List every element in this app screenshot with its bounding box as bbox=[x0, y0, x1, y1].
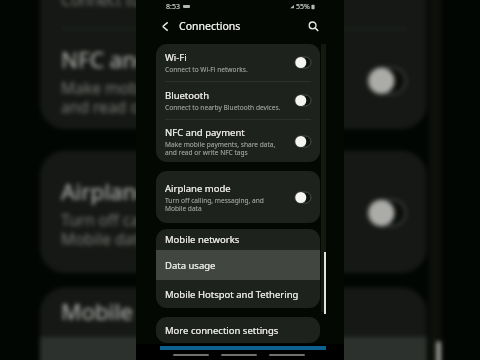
staticText: Turn off calling, messaging, and Mobile … bbox=[165, 196, 264, 213]
button[interactable]: More connection settings bbox=[156, 317, 320, 343]
button[interactable]: Toggle bbox=[295, 136, 311, 147]
staticText: Data usage bbox=[165, 259, 216, 272]
button[interactable]: Toggle bbox=[295, 57, 311, 68]
staticText: Data usage bbox=[61, 358, 181, 360]
button[interactable]: Data usage bbox=[156, 250, 320, 280]
staticText: Connect to nearby Bluetooth devices. bbox=[165, 103, 281, 112]
staticText: Turn off calling, messaging, and Mobile … bbox=[61, 209, 295, 249]
button[interactable]: Toggle bbox=[295, 192, 311, 203]
button[interactable]: Toggle bbox=[295, 95, 311, 106]
button[interactable]: Back bbox=[158, 17, 171, 35]
staticText: Make mobile payments, share data, and re… bbox=[165, 140, 276, 157]
button[interactable]: Mobile Hotspot and Tethering bbox=[156, 280, 320, 308]
button[interactable]: Navigation bbox=[269, 354, 305, 356]
staticText: Wi-Fi bbox=[165, 51, 187, 64]
button[interactable]: Navigation bbox=[173, 354, 209, 356]
button[interactable]: Mobile networks bbox=[40, 287, 427, 337]
button[interactable]: Mobile networks bbox=[156, 229, 320, 250]
staticText: Airplane mode bbox=[165, 182, 231, 195]
button[interactable]: Search bbox=[305, 18, 321, 34]
staticText: Mobile Hotspot and Tethering bbox=[165, 288, 299, 301]
button[interactable]: NFC and payment bbox=[156, 120, 320, 162]
staticText: Airplane mode bbox=[61, 176, 217, 207]
button[interactable]: Wi-Fi bbox=[156, 44, 320, 81]
staticText: Bluetooth bbox=[165, 89, 210, 102]
staticText: 55% bbox=[296, 2, 310, 12]
staticText: Make mobile payments, share data, and re… bbox=[61, 77, 323, 117]
button[interactable]: Data usage bbox=[40, 337, 427, 360]
button[interactable]: Toggle bbox=[368, 68, 406, 94]
staticText: Connections bbox=[179, 19, 241, 33]
staticText: Mobile networks bbox=[165, 233, 240, 246]
staticText: Mobile networks bbox=[61, 297, 238, 327]
staticText: More connection settings bbox=[165, 324, 279, 337]
staticText: Connect to nearby Bluetooth devices. bbox=[61, 0, 335, 11]
staticText: NFC and payment bbox=[165, 126, 245, 139]
button[interactable]: Bluetooth bbox=[40, 0, 427, 28]
staticText: Connect to Wi-Fi networks. bbox=[165, 65, 248, 74]
button[interactable]: Navigation bbox=[221, 354, 257, 356]
button[interactable]: Toggle bbox=[368, 200, 406, 226]
button[interactable]: Airplane mode bbox=[156, 171, 320, 223]
button[interactable]: Bluetooth bbox=[156, 82, 320, 119]
button[interactable]: NFC and payment bbox=[40, 30, 427, 129]
staticText: NFC and payment bbox=[61, 44, 250, 75]
button[interactable]: Airplane mode bbox=[40, 150, 427, 273]
staticText: 8:53 bbox=[166, 2, 180, 12]
